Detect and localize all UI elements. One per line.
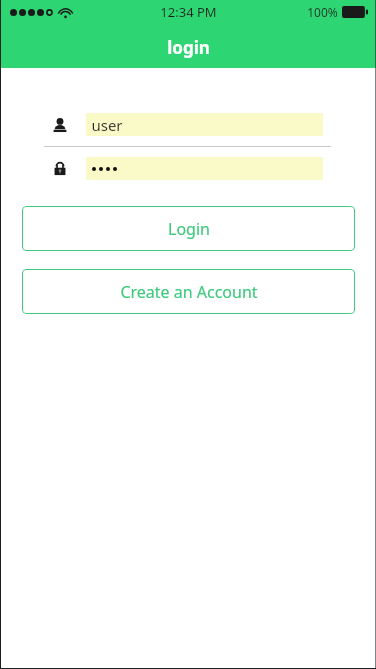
staticText: 12:34 PM	[160, 3, 217, 21]
staticText: 100%	[307, 4, 338, 20]
staticText: user	[91, 115, 123, 135]
staticText: Create an Account	[120, 281, 258, 303]
button[interactable]	[86, 157, 323, 180]
button[interactable]: user	[86, 113, 323, 136]
staticText: Login	[168, 218, 210, 240]
button[interactable]: Create an Account	[22, 269, 355, 314]
staticText: login	[167, 36, 210, 59]
button[interactable]: Login	[22, 206, 355, 251]
